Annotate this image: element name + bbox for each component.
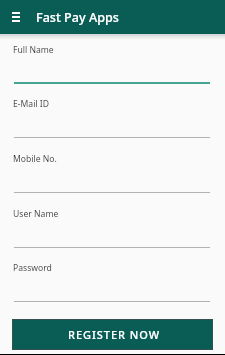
button[interactable]: User Name: [14, 206, 210, 248]
staticText: Full Name: [13, 44, 54, 56]
staticText: Fast Pay Apps: [36, 9, 119, 26]
button[interactable]: Mobile No.: [14, 151, 210, 193]
staticText: E-Mail ID: [13, 98, 50, 110]
staticText: Password: [13, 262, 52, 274]
button[interactable]: E-Mail ID: [14, 96, 210, 138]
staticText: User Name: [13, 208, 59, 220]
button[interactable]: Menu: [0, 0, 32, 34]
button[interactable]: Full Name: [14, 42, 210, 84]
button[interactable]: Password: [14, 260, 210, 302]
staticText: Mobile No.: [13, 153, 57, 165]
button[interactable]: REGISTER NOW: [13, 320, 212, 349]
staticText: REGISTER NOW: [68, 327, 160, 342]
